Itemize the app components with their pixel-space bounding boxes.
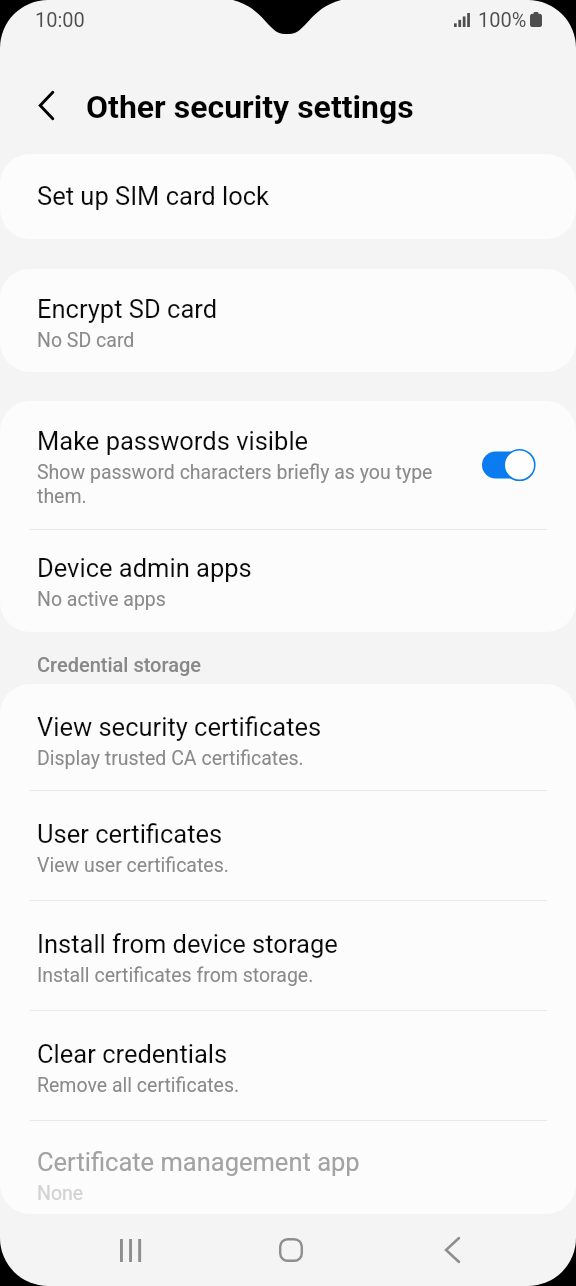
button[interactable]: Make passwords visible: [0, 401, 576, 529]
button[interactable]: Navigate up: [18, 77, 75, 134]
staticText: Remove all certificates.: [37, 1074, 240, 1097]
staticText: Set up SIM card lock: [37, 181, 270, 211]
staticText: Other security settings: [86, 88, 414, 126]
staticText: User certificates: [37, 819, 223, 849]
staticText: Certificate management app: [37, 1147, 360, 1177]
button[interactable]: Device admin apps: [0, 530, 576, 632]
button[interactable]: Recent apps: [75, 1214, 185, 1286]
button[interactable]: User certificates: [0, 791, 576, 900]
staticText: No active apps: [37, 588, 166, 611]
button[interactable]: View security certificates: [0, 684, 576, 790]
button[interactable]: Back: [397, 1214, 507, 1286]
staticText: Display trusted CA certificates.: [37, 747, 304, 770]
button[interactable]: Encrypt SD card: [0, 269, 576, 372]
button[interactable]: Clear credentials: [0, 1011, 576, 1120]
staticText: 100%: [478, 8, 527, 31]
staticText: View user certificates.: [37, 854, 229, 877]
button[interactable]: Home: [236, 1214, 346, 1286]
staticText: Show password characters briefly as you …: [37, 461, 468, 507]
button[interactable]: Set up SIM card lock: [0, 154, 576, 239]
staticText: 10:00: [35, 8, 85, 31]
button[interactable]: Make passwords visible, on: [482, 448, 536, 482]
staticText: Device admin apps: [37, 553, 252, 583]
staticText: No SD card: [37, 329, 135, 352]
staticText: Install certificates from storage.: [37, 964, 314, 987]
staticText: Clear credentials: [37, 1039, 228, 1069]
staticText: None: [37, 1182, 84, 1205]
staticText: Credential storage: [37, 653, 201, 676]
staticText: View security certificates: [37, 712, 322, 742]
staticText: Encrypt SD card: [37, 294, 218, 324]
staticText: Make passwords visible: [37, 426, 309, 456]
staticText: Install from device storage: [37, 929, 338, 959]
button[interactable]: Certificate management app: [0, 1121, 576, 1214]
button[interactable]: Install from device storage: [0, 901, 576, 1010]
